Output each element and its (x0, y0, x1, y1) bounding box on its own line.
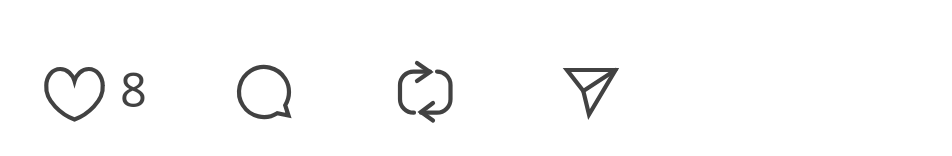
button[interactable]: Boost (394, 58, 456, 120)
button[interactable]: Comment (234, 58, 296, 120)
staticText: 8 (120, 57, 147, 121)
button[interactable]: Share (562, 58, 624, 120)
button[interactable]: Like, 8 (40, 60, 146, 124)
